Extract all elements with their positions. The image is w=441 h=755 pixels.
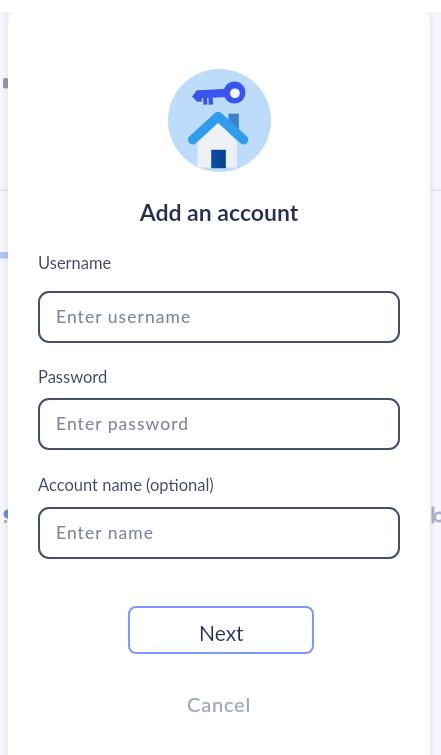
staticText: Enter username: [56, 306, 192, 327]
staticText: Cancel: [187, 692, 252, 716]
button[interactable]: Enter password: [38, 398, 400, 450]
staticText: Enter password: [56, 413, 190, 434]
button[interactable]: Enter name: [38, 507, 400, 559]
staticText: Enter name: [56, 522, 155, 543]
button[interactable]: Enter username: [38, 291, 400, 343]
staticText: Username: [38, 253, 112, 273]
button[interactable]: Next: [128, 606, 314, 654]
staticText: Account name (optional): [38, 475, 214, 495]
staticText: Next: [199, 620, 244, 645]
button[interactable]: Cancel: [8, 686, 430, 722]
staticText: Add an account: [8, 198, 430, 226]
staticText: Password: [38, 367, 108, 387]
